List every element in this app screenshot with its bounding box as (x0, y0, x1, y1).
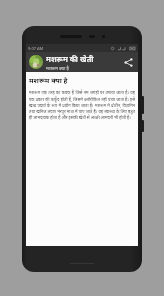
button[interactable] (29, 55, 43, 69)
staticText: 9:07 AM (28, 46, 44, 51)
staticText: मशरूम की खेती (46, 54, 94, 64)
staticText: मशरूम एक तरह का कवक है जिसे नम जगहों पर … (29, 90, 135, 120)
staticText: मशरूम क्या है (29, 76, 68, 86)
staticText: मशरूम क्या है (46, 65, 69, 71)
button[interactable]: Share (121, 55, 135, 69)
